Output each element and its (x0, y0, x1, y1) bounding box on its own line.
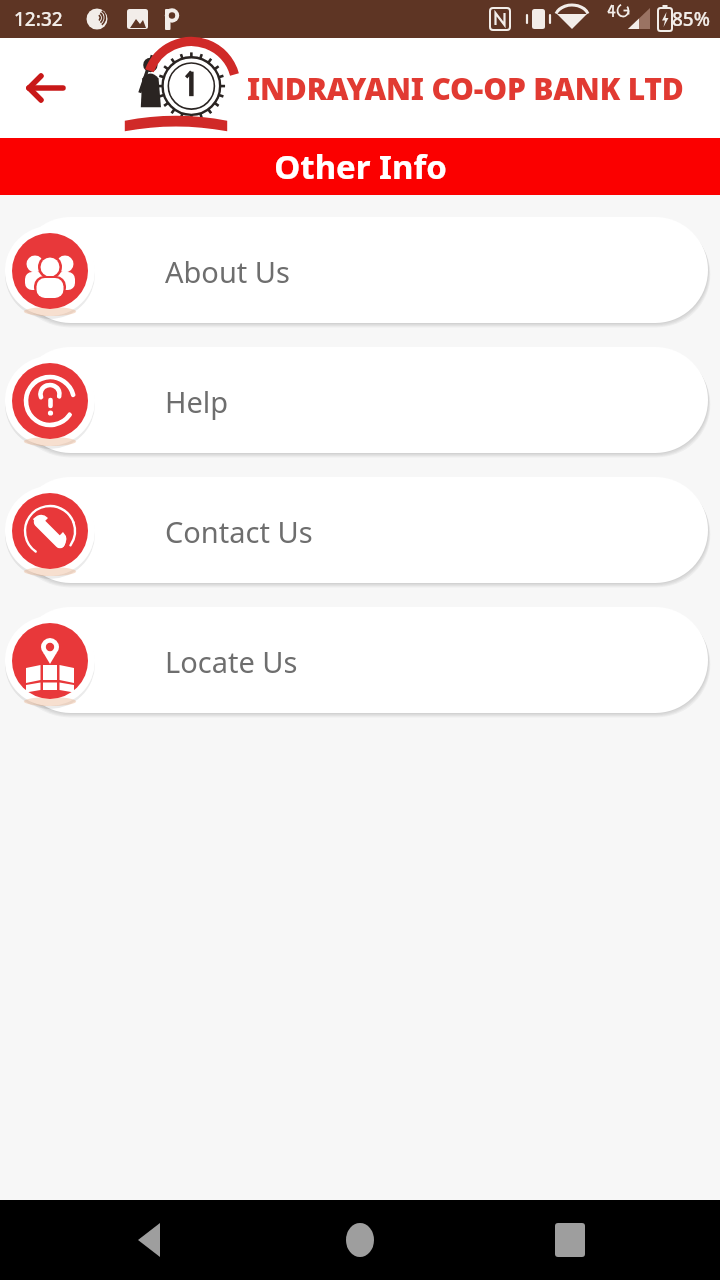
staticText: Other Info (274, 144, 447, 189)
button[interactable]: About Us (18, 215, 708, 327)
button[interactable]: Back (118, 1208, 182, 1272)
staticText: INDRAYANI CO-OP BANK LTD (247, 68, 684, 109)
staticText: Locate Us (165, 642, 298, 681)
button[interactable]: Home (328, 1208, 392, 1272)
button[interactable]: Back (16, 58, 76, 118)
staticText: 12:32 (14, 6, 63, 32)
button[interactable]: Recents (538, 1208, 602, 1272)
staticText: 85% (672, 6, 710, 32)
staticText: Contact Us (165, 512, 313, 551)
staticText: About Us (165, 252, 290, 291)
button[interactable]: Contact Us (18, 475, 708, 587)
button[interactable]: Help (18, 345, 708, 457)
button[interactable]: Locate Us (18, 605, 708, 717)
staticText: Help (165, 382, 229, 421)
